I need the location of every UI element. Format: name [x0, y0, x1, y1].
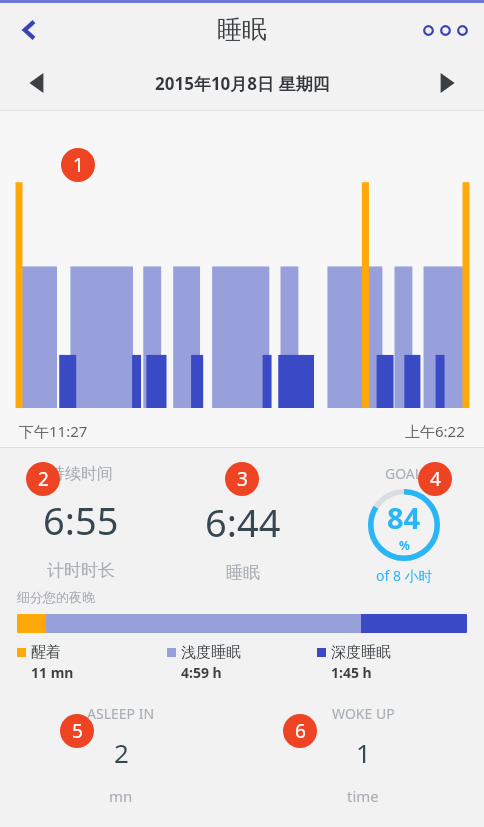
staticText: 浅度睡眠: [181, 643, 241, 662]
staticText: mn: [109, 786, 133, 806]
staticText: 上午6:22: [405, 421, 465, 441]
button[interactable]: Back: [6, 6, 54, 54]
staticText: time: [347, 786, 379, 806]
staticText: 下午11:27: [19, 421, 88, 441]
staticText: 醒着: [31, 643, 61, 662]
staticText: 4:59 h: [181, 663, 222, 682]
staticText: GOAL: [385, 464, 423, 483]
staticText: %: [399, 537, 410, 553]
button[interactable]: WOKE UP: [242, 700, 484, 806]
staticText: 5: [72, 718, 83, 744]
staticText: 睡眠: [217, 14, 267, 45]
staticText: 6: [295, 718, 306, 744]
staticText: 1:45 h: [331, 663, 372, 682]
staticText: 3: [237, 466, 248, 492]
staticText: 6:44: [205, 496, 281, 548]
staticText: 2: [114, 735, 129, 770]
staticText: 1: [356, 735, 371, 770]
staticText: 4: [430, 466, 441, 492]
button[interactable]: ASLEEP IN: [0, 700, 242, 806]
staticText: 1: [73, 152, 84, 178]
staticText: 2015年10月8日 星期四: [155, 72, 330, 95]
button[interactable]: Next day: [424, 60, 470, 106]
button[interactable]: 6:44: [162, 448, 323, 583]
staticText: 深度睡眠: [331, 643, 391, 662]
staticText: 计时时长: [47, 560, 115, 581]
staticText: 6:55: [43, 494, 119, 546]
staticText: 2: [38, 466, 49, 492]
staticText: 睡眠: [226, 562, 260, 583]
staticText: WOKE UP: [332, 704, 395, 723]
button[interactable]: 持续时间: [0, 448, 162, 581]
staticText: 细分您的夜晚: [17, 589, 95, 605]
staticText: of 8 小时: [376, 566, 433, 585]
staticText: 11 mn: [31, 663, 74, 682]
staticText: 持续时间: [49, 464, 113, 484]
staticText: 84: [387, 498, 421, 537]
button[interactable]: Previous day: [14, 60, 60, 106]
button[interactable]: More options: [423, 8, 468, 52]
staticText: ASLEEP IN: [87, 704, 155, 723]
